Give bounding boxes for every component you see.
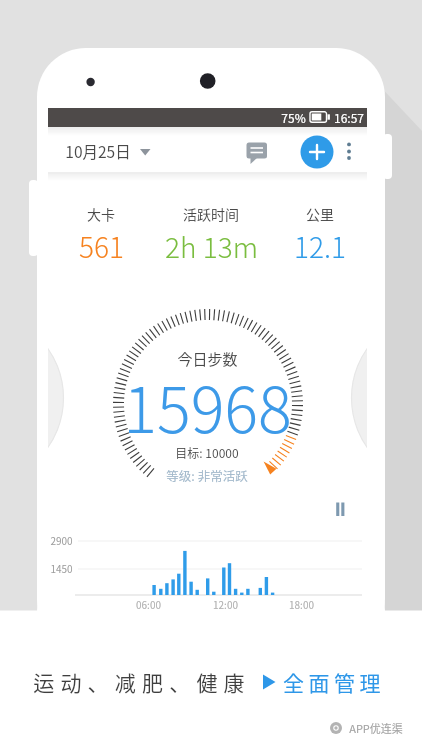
staticText: 18:00 [289, 597, 314, 611]
staticText: 大卡 [87, 204, 115, 224]
staticText: 12:00 [213, 597, 238, 611]
button[interactable] [280, 664, 390, 700]
staticText: 12.1 [294, 226, 346, 267]
staticText: 活跃时间 [183, 204, 239, 224]
staticText: 公里 [306, 204, 334, 224]
staticText: 运动、减肥、健康 [33, 667, 251, 697]
button[interactable] [326, 494, 352, 522]
staticText: 10月25日 [65, 140, 131, 162]
staticText: 2900 [50, 533, 73, 547]
staticText: 等级: 非常活跃 [166, 466, 248, 484]
staticText: 全面管理 [283, 667, 385, 697]
staticText: APP优连渠 [349, 720, 403, 736]
staticText: 06:00 [136, 597, 161, 611]
staticText: 561 [79, 226, 124, 267]
staticText: 1450 [50, 561, 73, 575]
staticText: 2h 13m [165, 226, 258, 267]
button[interactable] [300, 135, 334, 169]
button[interactable] [339, 134, 360, 168]
staticText: 16:57 [334, 109, 364, 126]
button[interactable] [55, 135, 160, 168]
staticText: 15968 [123, 360, 292, 451]
staticText: 今日步数 [177, 348, 238, 370]
staticText: 75% [281, 109, 306, 126]
staticText: 目标: 10000 [175, 444, 239, 461]
button[interactable] [240, 136, 274, 168]
